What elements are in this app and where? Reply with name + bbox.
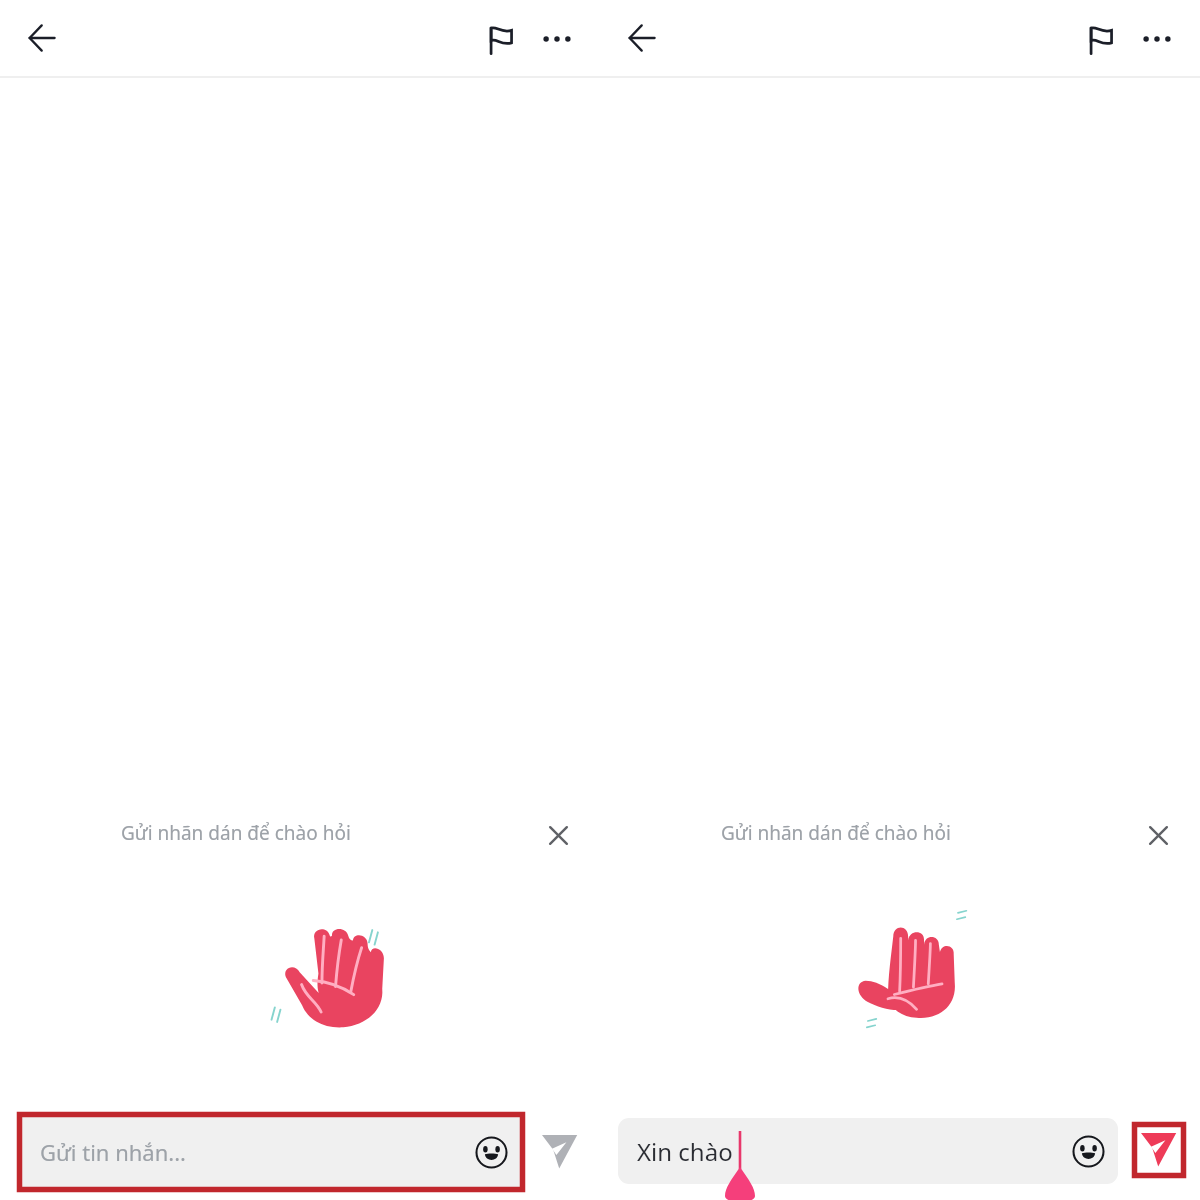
button[interactable]: More options [533, 15, 581, 63]
staticText: Xin chào [637, 1135, 733, 1168]
staticText: Gửi nhãn dán để chào hỏi [721, 820, 951, 846]
button[interactable]: Waving hand sticker [833, 895, 979, 1041]
button[interactable]: Send [1135, 1125, 1183, 1173]
button[interactable]: Report [477, 15, 525, 63]
button[interactable]: Gửi tin nhắn... [20, 1115, 523, 1189]
button[interactable]: Send [534, 1125, 586, 1177]
staticText: Gửi nhãn dán để chào hỏi [121, 820, 351, 846]
staticText: Gửi tin nhắn... [40, 1137, 186, 1167]
button[interactable]: Report [1077, 15, 1125, 63]
button[interactable]: Waving hand sticker [256, 900, 408, 1052]
button[interactable]: More options [1133, 15, 1181, 63]
button[interactable]: Back [18, 14, 66, 62]
button[interactable]: Back [618, 14, 666, 62]
button[interactable]: Close [1138, 815, 1178, 855]
button[interactable]: Emoji [473, 1134, 509, 1170]
button[interactable]: Close [538, 815, 578, 855]
button[interactable]: Xin chào [618, 1118, 1118, 1184]
button[interactable]: Emoji [1070, 1133, 1106, 1169]
